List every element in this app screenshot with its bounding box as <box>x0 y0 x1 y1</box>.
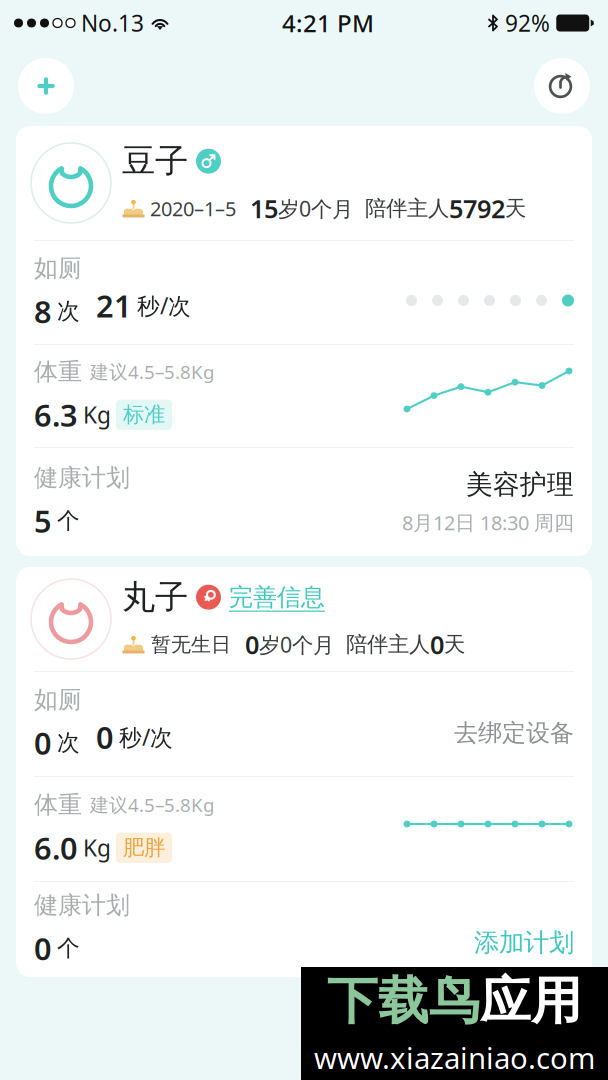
button[interactable]: 完善信息 <box>229 582 325 612</box>
staticText: 应用 <box>480 970 582 1032</box>
staticText: 体重 <box>34 357 82 386</box>
staticText: 2020–1–5 <box>145 195 236 222</box>
staticText: 8月12日 18:30 周四 <box>402 509 574 536</box>
staticText: 健康计划 <box>34 890 130 920</box>
staticText: 0 <box>34 928 52 969</box>
staticText: 0 <box>34 722 52 763</box>
staticText: 次 <box>57 729 80 757</box>
staticText: 暂无生日 <box>145 632 231 657</box>
staticText: 岁0个月 <box>278 194 353 223</box>
staticText: 个 <box>57 507 80 535</box>
staticText: 天 <box>444 631 465 658</box>
staticText: 标准 <box>123 402 165 428</box>
staticText: 美容护理 <box>466 468 574 501</box>
staticText: 建议4.5–5.8Kg <box>90 792 214 817</box>
staticText: 个 <box>57 934 80 962</box>
staticText: 天 <box>505 195 526 222</box>
staticText: 5 <box>34 500 52 541</box>
staticText: 体重 <box>34 790 82 819</box>
staticText: 92% <box>505 8 550 38</box>
staticText: Kg <box>83 833 111 863</box>
staticText: 添加计划 <box>474 927 574 958</box>
staticText: 15 <box>236 192 278 225</box>
staticText: 健康计划 <box>34 463 130 492</box>
button[interactable]: Add pet <box>18 58 74 114</box>
staticText: 去绑定设备 <box>454 718 574 748</box>
staticText: 0 <box>430 628 444 661</box>
staticText: 如厕 <box>34 253 82 283</box>
staticText: 如厕 <box>34 685 82 714</box>
staticText: 0 <box>231 628 259 661</box>
staticText: 陪伴主人 <box>353 195 449 222</box>
staticText: Kg <box>83 400 111 430</box>
staticText: 次 <box>57 297 80 325</box>
button[interactable]: Refresh <box>534 58 590 114</box>
staticText: 21 <box>96 285 132 326</box>
staticText: 丸子 <box>122 577 188 618</box>
staticText: 建议4.5–5.8Kg <box>90 359 214 384</box>
staticText: 下载鸟 <box>327 970 480 1032</box>
staticText: 8 <box>34 291 52 332</box>
staticText: 4:21 PM <box>282 7 374 39</box>
staticText: 秒/次 <box>119 722 173 752</box>
staticText: 肥胖 <box>123 835 165 861</box>
staticText: www.xiazainiao.com <box>314 1038 595 1077</box>
staticText: 秒/次 <box>137 290 191 320</box>
staticText: 5792 <box>449 192 505 225</box>
button[interactable]: 添加计划 <box>474 901 574 958</box>
staticText: 6.0 <box>34 827 78 868</box>
staticText: 0 <box>96 717 114 757</box>
button[interactable]: 去绑定设备 <box>454 700 574 748</box>
staticText: 完善信息 <box>229 582 325 612</box>
staticText: 陪伴主人 <box>334 631 430 658</box>
staticText: 岁0个月 <box>259 630 334 659</box>
staticText: 豆子 <box>122 141 188 182</box>
staticText: No.13 <box>75 8 144 38</box>
staticText: 6.3 <box>34 394 78 435</box>
